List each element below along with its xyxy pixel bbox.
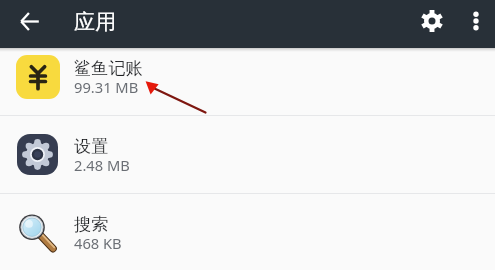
staticText: 搜索 [74, 213, 109, 235]
button[interactable]: More options [461, 6, 491, 36]
staticText: 应用 [74, 9, 116, 35]
button[interactable]: 搜索 [0, 193, 495, 270]
button[interactable]: Back [12, 4, 47, 39]
staticText: 设置 [74, 135, 109, 157]
staticText: 鲨鱼记账 [74, 57, 143, 79]
button[interactable]: 鲨鱼记账 [0, 37, 495, 115]
button[interactable]: 设置 [0, 115, 495, 193]
staticText: 2.48 MB [74, 155, 130, 175]
staticText: 99.31 MB [74, 77, 139, 97]
staticText: 468 KB [74, 233, 122, 253]
button[interactable]: Settings [414, 3, 450, 39]
